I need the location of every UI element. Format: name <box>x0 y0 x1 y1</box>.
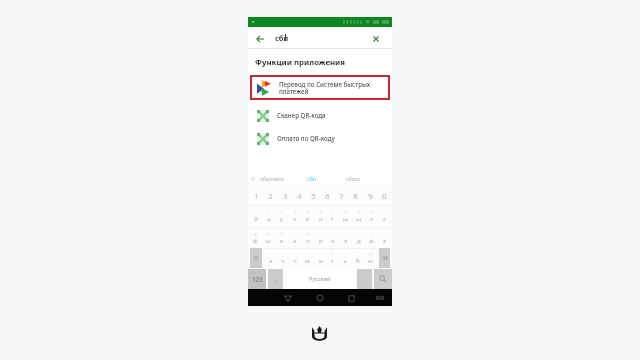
button[interactable]: Оплата по QR-коду <box>248 128 392 151</box>
button[interactable]: 6 <box>321 187 333 205</box>
button[interactable]: сброс <box>339 170 367 187</box>
staticText: э <box>383 237 386 245</box>
button[interactable]: 0 <box>378 187 390 205</box>
button[interactable]: 2 <box>263 206 274 227</box>
button[interactable]: 1 <box>250 187 262 205</box>
button[interactable]: ₽ <box>276 228 287 248</box>
staticText: 4 <box>297 191 302 201</box>
button[interactable]: @ <box>250 228 261 248</box>
button[interactable]: Home <box>312 290 328 306</box>
staticText: н <box>319 215 323 223</box>
button[interactable]: ; <box>277 248 288 268</box>
button[interactable]: , <box>340 248 351 268</box>
button[interactable]: 1 <box>250 206 261 227</box>
button[interactable]: 4 <box>289 206 300 227</box>
button[interactable]: 3 <box>279 187 291 205</box>
button[interactable]: 7 <box>327 206 338 227</box>
button[interactable]: 2 <box>264 187 276 205</box>
button[interactable]: : <box>265 248 276 268</box>
button[interactable]: - <box>315 228 326 248</box>
staticText: % <box>369 252 373 257</box>
button[interactable]: сбп <box>299 170 325 187</box>
button[interactable]: Shift <box>250 248 262 268</box>
button[interactable]: 5 <box>307 187 319 205</box>
button[interactable]: _ <box>289 228 300 248</box>
button[interactable]: 6 <box>315 206 326 227</box>
button[interactable]: + <box>327 228 338 248</box>
staticText: ы <box>266 237 271 245</box>
button[interactable]: 4 <box>293 187 305 205</box>
button[interactable]: 7 <box>335 187 347 205</box>
staticText: ш <box>343 215 349 223</box>
staticText: Сканер QR-кода <box>277 111 326 119</box>
button[interactable]: Back <box>252 31 268 47</box>
staticText: & <box>307 232 310 237</box>
button[interactable]: Русский <box>283 269 356 289</box>
staticText: б <box>356 257 360 265</box>
button[interactable]: % <box>365 248 376 268</box>
button[interactable]: & <box>302 228 313 248</box>
staticText: в <box>280 237 284 245</box>
staticText: / <box>371 232 373 237</box>
button[interactable]: # <box>263 228 274 248</box>
staticText: 2 <box>268 191 273 201</box>
button[interactable]: / <box>366 228 377 248</box>
staticText: : <box>270 252 272 257</box>
staticText: _ <box>294 232 296 237</box>
staticText: г <box>331 215 334 223</box>
staticText: 5 <box>307 210 310 215</box>
button[interactable]: Recent apps <box>343 290 359 306</box>
button[interactable]: ? <box>327 248 338 268</box>
button[interactable]: ) <box>353 228 364 248</box>
button[interactable]: 5 <box>302 206 313 227</box>
button[interactable]: Clear query <box>368 31 384 47</box>
button[interactable]: обронить <box>254 170 290 187</box>
button[interactable]: 0 <box>366 206 377 227</box>
button[interactable]: 3 <box>276 206 287 227</box>
button[interactable]: More suggestions <box>248 174 257 183</box>
button[interactable]: 9 <box>353 206 364 227</box>
button[interactable]: 9 <box>364 187 376 205</box>
button[interactable]: ' <box>302 248 313 268</box>
staticText: п <box>306 237 310 245</box>
staticText: ь <box>344 257 348 265</box>
button[interactable]: Search <box>374 269 392 289</box>
button[interactable]: . <box>352 248 363 268</box>
staticText: 4 <box>294 210 297 215</box>
button[interactable]: Back <box>280 290 296 306</box>
button[interactable]: 8 <box>349 187 361 205</box>
button[interactable]: Сканер QR-кода <box>248 105 392 128</box>
staticText: * <box>383 232 386 237</box>
staticText: д <box>357 237 361 245</box>
staticText: с <box>294 257 297 265</box>
staticText: ' <box>307 252 308 257</box>
button[interactable]: 123 <box>248 269 266 289</box>
staticText: ? <box>332 252 334 257</box>
staticText: 1 <box>255 210 258 215</box>
staticText: и <box>319 257 323 265</box>
staticText: 0 <box>370 210 373 215</box>
button[interactable]: 8 <box>340 206 351 227</box>
staticText: ; <box>282 252 284 257</box>
staticText: ₽ <box>281 232 284 237</box>
staticText: ж <box>369 237 374 245</box>
button[interactable]: * <box>379 228 390 248</box>
button[interactable]: " <box>290 248 301 268</box>
staticText: ц <box>267 215 271 223</box>
staticText: . <box>364 275 366 284</box>
staticText: ф <box>253 237 258 245</box>
button[interactable]: ! <box>315 248 326 268</box>
staticText: 3 <box>283 191 288 201</box>
staticText: ) <box>358 232 360 237</box>
button[interactable]: Перевод по Системе быстрых платежей <box>252 77 388 98</box>
button[interactable]: ( <box>340 228 351 248</box>
staticText: 5 <box>311 191 316 201</box>
button[interactable]: Backspace <box>379 248 390 268</box>
button[interactable]: + <box>379 206 390 227</box>
staticText: о <box>331 237 335 245</box>
staticText: сбп <box>307 175 317 182</box>
button[interactable]: Hide keyboard <box>372 290 388 306</box>
